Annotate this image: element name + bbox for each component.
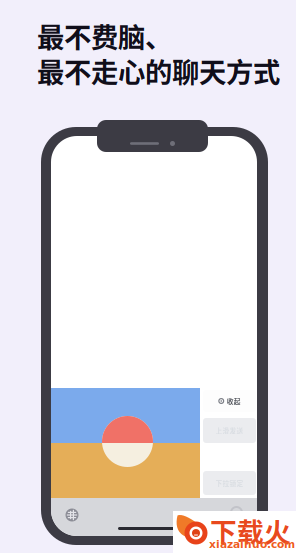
- button[interactable]: 上滑发送: [203, 418, 256, 443]
- staticText: 下载火: [210, 511, 291, 550]
- staticText: 最不费脑、: [37, 16, 172, 56]
- staticText: xiazaihuo.com: [209, 538, 295, 550]
- button[interactable]: Switch keyboard: [58, 502, 86, 528]
- button[interactable]: 下拉锁定: [203, 471, 256, 495]
- staticText: 下拉锁定: [215, 478, 243, 488]
- staticText: 最不走心的聊天方式: [37, 51, 280, 91]
- button[interactable]: 收起: [203, 390, 256, 412]
- staticText: 收起: [227, 396, 241, 406]
- staticText: 上滑发送: [215, 426, 243, 435]
